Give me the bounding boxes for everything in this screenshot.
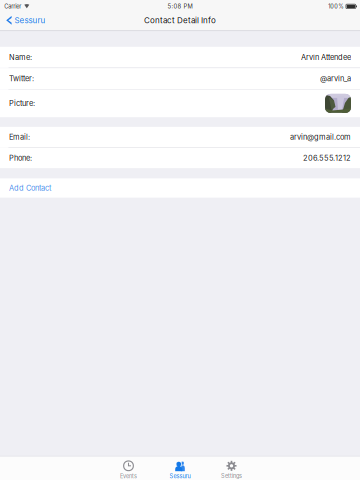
button[interactable]: Events	[103, 457, 154, 480]
staticText: Sessuru	[169, 473, 190, 480]
staticText: Events	[120, 473, 137, 480]
button[interactable]: Add Contact	[0, 178, 360, 198]
staticText: Sessuru	[15, 15, 46, 25]
staticText: Name:	[9, 53, 32, 62]
button[interactable]: Settings	[206, 457, 257, 480]
staticText: Arvin Attendee	[301, 53, 351, 62]
staticText: Email:	[9, 132, 30, 141]
staticText: Settings	[221, 472, 242, 479]
staticText: 5:08 PM	[167, 3, 192, 10]
staticText: 100%	[328, 3, 343, 10]
staticText: Phone:	[9, 153, 32, 162]
staticText: arvin@gmail.com	[290, 132, 351, 141]
staticText: Add Contact	[9, 183, 51, 192]
staticText: Contact Detail Info	[144, 15, 216, 25]
button[interactable]: Sessuru	[0, 12, 52, 31]
staticText: Picture:	[9, 99, 35, 108]
staticText: 206.555.1212	[303, 153, 351, 162]
staticText: @arvin_a	[320, 74, 351, 83]
staticText: Carrier	[4, 3, 21, 10]
staticText: Twitter:	[9, 74, 34, 83]
button[interactable]: Sessuru	[154, 457, 206, 480]
